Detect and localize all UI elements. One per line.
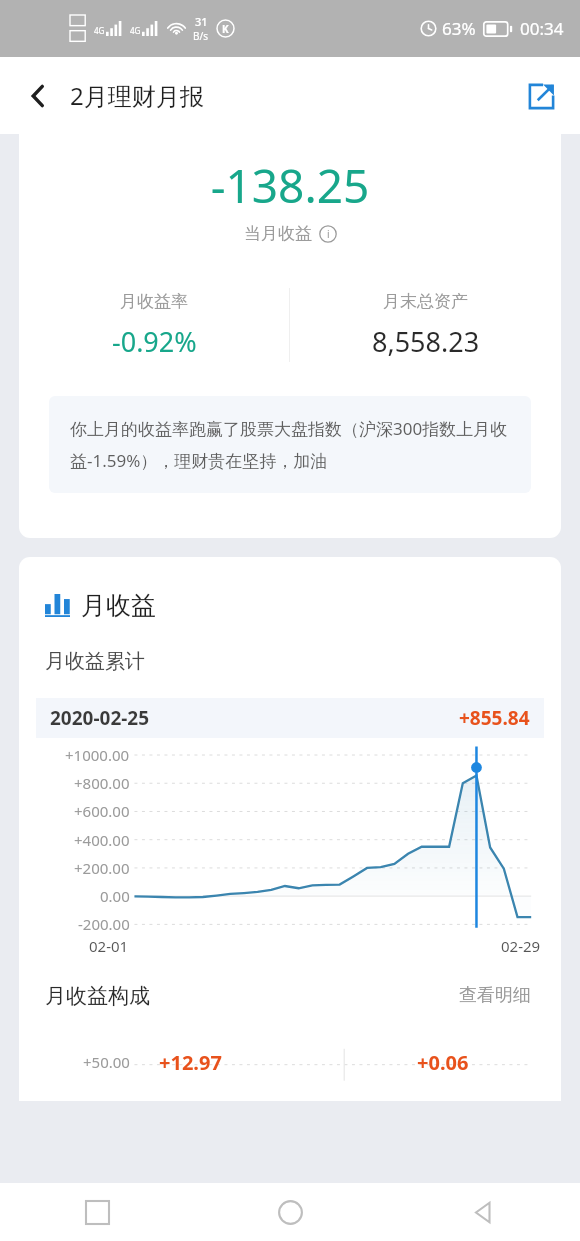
staticText: 月收益构成 xyxy=(45,983,150,1009)
staticText: -138.25 xyxy=(19,154,561,217)
staticText: +600.00 xyxy=(74,801,130,821)
staticText: 4G xyxy=(94,25,105,36)
button[interactable]: Back xyxy=(387,1183,580,1241)
staticText: 月收益 xyxy=(81,590,156,621)
staticText: +800.00 xyxy=(74,773,130,793)
button[interactable]: 收益说明 xyxy=(319,225,337,243)
staticText: -200.00 xyxy=(78,914,130,934)
staticText: +0.06 xyxy=(417,1049,469,1076)
staticText: +200.00 xyxy=(74,858,130,878)
staticText: 2月理财月报 xyxy=(70,79,204,112)
staticText: 你上月的收益率跑赢了股票大盘指数（沪深300指数上月收益-1.59%），理财贵在… xyxy=(70,417,510,472)
staticText: -0.92% xyxy=(112,323,197,360)
staticText: i xyxy=(327,227,330,241)
staticText: K xyxy=(222,22,229,36)
button[interactable]: 查看明细 xyxy=(455,980,535,1011)
staticText: 2020-02-25 xyxy=(50,705,150,731)
staticText: 查看明细 xyxy=(459,984,531,1007)
staticText: 月末总资产 xyxy=(383,291,468,312)
staticText: +12.97 xyxy=(159,1049,222,1076)
button[interactable]: Back xyxy=(16,74,60,118)
staticText: 月收益累计 xyxy=(45,649,145,674)
button[interactable]: Recents xyxy=(0,1183,194,1241)
staticText: 当月收益 xyxy=(244,223,312,244)
staticText: 4G xyxy=(130,25,141,36)
staticText: 31 xyxy=(195,14,208,29)
staticText: +50.00 xyxy=(83,1052,130,1072)
staticText: 02-01 xyxy=(89,936,129,956)
staticText: 月收益率 xyxy=(120,291,188,312)
staticText: +1000.00 xyxy=(65,745,130,765)
button[interactable]: Home xyxy=(194,1183,387,1241)
staticText: 00:34 xyxy=(520,17,564,40)
staticText: +855.84 xyxy=(459,705,530,731)
button[interactable]: Share xyxy=(518,73,564,119)
staticText: 02-29 xyxy=(501,936,541,956)
staticText: 0.00 xyxy=(100,886,130,906)
staticText: B/s xyxy=(193,29,209,43)
staticText: 63% xyxy=(442,17,476,40)
staticText: 8,558.23 xyxy=(372,323,480,360)
staticText: +400.00 xyxy=(74,830,130,850)
